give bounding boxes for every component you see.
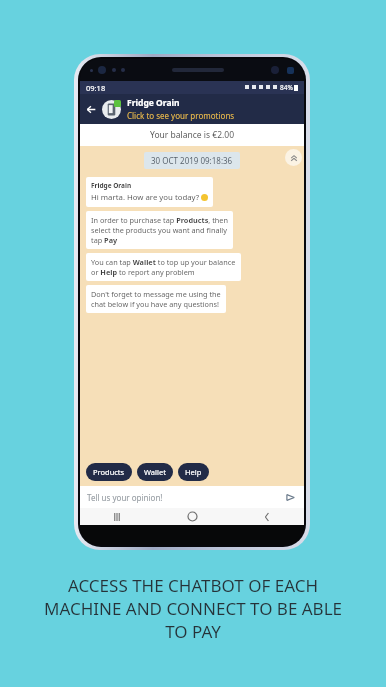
staticText: Products (93, 467, 125, 477)
button[interactable]: Wallet (137, 463, 173, 481)
staticText: 30 OCT 2019 09:18:36 (151, 155, 233, 166)
staticText: Tell us your opinion! (87, 492, 163, 503)
staticText: Fridge Orain (91, 181, 132, 190)
staticText: Don't forget to message me using the (91, 289, 221, 299)
staticText: tap Pay (91, 235, 118, 245)
staticText: You can tap Wallet to top up your balanc… (91, 257, 236, 267)
staticText: TO PAY (10, 620, 376, 643)
button[interactable]: Products (86, 463, 132, 481)
button[interactable]: Scroll to top (285, 149, 302, 166)
staticText: In order to purchase tap Products, then (91, 215, 228, 225)
staticText: Wallet (144, 467, 166, 477)
button[interactable]: Back (80, 94, 102, 124)
button[interactable]: You can tap Wallet to top up your balanc… (86, 253, 241, 281)
button[interactable]: In order to purchase tap Products, then (86, 211, 233, 249)
button[interactable]: Don't forget to message me using the (86, 285, 226, 313)
staticText: MACHINE AND CONNECT TO BE ABLE (10, 597, 376, 620)
staticText: 84% (280, 83, 293, 92)
button[interactable]: Back (254, 508, 280, 525)
staticText: Fridge Orain (127, 97, 180, 109)
button[interactable]: Recents (104, 508, 130, 525)
staticText: Click to see your promotions (127, 110, 235, 121)
staticText: 09:18 (86, 83, 106, 93)
staticText: ACCESS THE CHATBOT OF EACH (10, 574, 376, 597)
staticText: Help (185, 467, 202, 477)
button[interactable]: Tell us your opinion! (87, 492, 283, 503)
staticText: Hi marta. How are you today? (91, 192, 200, 203)
staticText: chat below if you have any questions! (91, 299, 219, 309)
staticText: or Help to report any problem (91, 267, 195, 277)
button[interactable]: Send (283, 490, 297, 504)
button[interactable]: Home (179, 508, 205, 525)
button[interactable]: Back (80, 94, 304, 124)
staticText: select the products you want and finally (91, 225, 227, 235)
button[interactable]: Fridge Orain (86, 177, 213, 207)
staticText: Your balance is €2.00 (150, 129, 234, 141)
button[interactable]: Help (178, 463, 209, 481)
